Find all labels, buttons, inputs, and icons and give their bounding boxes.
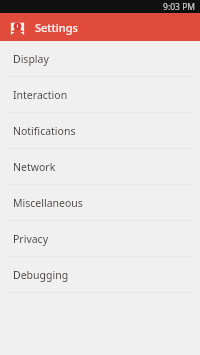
staticText: 9:03 PM: [163, 1, 195, 13]
staticText: Network: [13, 160, 56, 174]
staticText: Debugging: [13, 268, 69, 282]
staticText: Display: [13, 52, 49, 66]
staticText: Settings: [35, 20, 78, 35]
button[interactable]: Debugging: [0, 257, 200, 293]
staticText: Notifications: [13, 124, 76, 138]
staticText: Interaction: [13, 88, 68, 102]
button[interactable]: Privacy: [0, 221, 200, 257]
button[interactable]: Notifications: [0, 113, 200, 149]
button[interactable]: Miscellaneous: [0, 185, 200, 221]
staticText: Miscellaneous: [13, 196, 83, 210]
button[interactable]: Display: [0, 41, 200, 77]
staticText: Privacy: [13, 232, 49, 246]
button[interactable]: App icon: [9, 19, 25, 35]
button[interactable]: Interaction: [0, 77, 200, 113]
button[interactable]: Network: [0, 149, 200, 185]
